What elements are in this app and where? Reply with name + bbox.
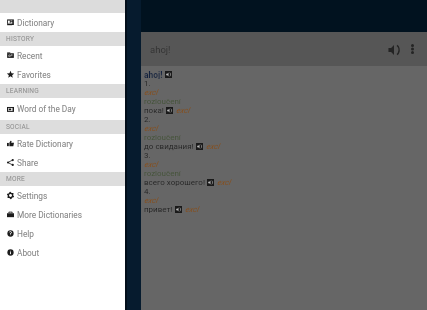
staticText: excl	[144, 196, 158, 205]
staticText: привет!	[144, 205, 173, 214]
staticText: SOCIAL	[6, 123, 30, 131]
button[interactable]: More Dictionaries	[0, 205, 125, 224]
staticText: excl	[206, 142, 220, 151]
button[interactable]: Recent	[0, 46, 125, 65]
staticText: excl	[144, 88, 158, 97]
staticText: Settings	[17, 191, 48, 201]
button[interactable]: Dictionary	[0, 13, 125, 32]
staticText: Dictionary	[17, 18, 55, 28]
staticText: всего хорошего!	[144, 178, 205, 187]
staticText: Favorites	[17, 70, 51, 80]
staticText: 2.	[144, 115, 151, 124]
staticText: excl	[217, 178, 231, 187]
staticText: 1.	[144, 79, 151, 88]
staticText: About	[17, 248, 40, 258]
button[interactable]: Rate Dictionary	[0, 134, 125, 153]
staticText: HISTORY	[6, 35, 35, 43]
button[interactable]: Share	[0, 153, 125, 172]
staticText: MORE	[6, 175, 25, 183]
staticText: ahoj!	[150, 44, 171, 55]
staticText: excl	[144, 124, 158, 133]
staticText: 3.	[144, 151, 151, 160]
button[interactable]: Help	[0, 224, 125, 243]
button[interactable]: Pronounce	[382, 38, 405, 61]
staticText: Recent	[17, 51, 43, 61]
staticText: Share	[17, 158, 39, 168]
button[interactable]: Play pronunciation	[165, 71, 172, 78]
staticText: More Dictionaries	[17, 210, 83, 220]
button[interactable]: Play pronunciation	[196, 143, 203, 150]
staticText: Word of the Day	[17, 104, 76, 114]
button[interactable]: More options	[403, 40, 421, 58]
button[interactable]: About	[0, 243, 125, 262]
staticText: excl	[185, 205, 199, 214]
staticText: ahoj!	[144, 70, 163, 79]
button[interactable]: Play pronunciation	[166, 107, 173, 114]
button[interactable]: Play pronunciation	[207, 179, 214, 186]
staticText: 4.	[144, 187, 151, 196]
button[interactable]: Favorites	[0, 65, 125, 84]
button[interactable]: Settings	[0, 186, 125, 205]
button[interactable]: Play pronunciation	[175, 206, 182, 213]
staticText: excl	[176, 106, 190, 115]
button[interactable]: Word of the Day	[0, 98, 125, 120]
staticText: LEARNING	[6, 87, 39, 95]
staticText: rozloučení	[144, 133, 181, 142]
staticText: Rate Dictionary	[17, 139, 73, 149]
staticText: Help	[17, 229, 34, 239]
staticText: до свидания!	[144, 142, 194, 151]
staticText: rozloučení	[144, 97, 181, 106]
staticText: rozloučení	[144, 169, 181, 178]
staticText: excl	[144, 160, 158, 169]
staticText: пока!	[144, 106, 164, 115]
